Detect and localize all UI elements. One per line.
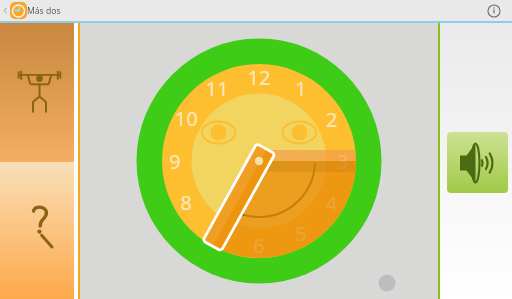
staticText: Más dos [27,5,61,17]
button[interactable]: Info [484,1,504,21]
button[interactable]: App icon [10,2,27,19]
button[interactable]: Practice [0,23,74,162]
button[interactable]: Help [0,162,74,299]
button[interactable]: Listen [447,132,508,193]
